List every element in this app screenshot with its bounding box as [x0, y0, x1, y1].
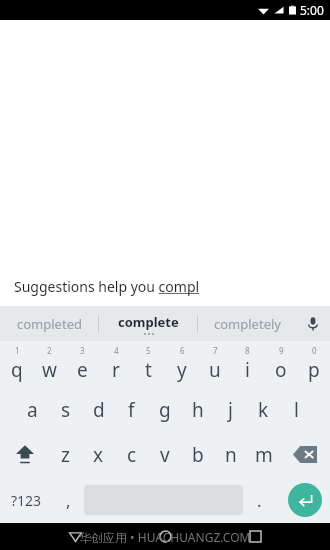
staticText: r: [112, 357, 120, 383]
button[interactable]: g: [148, 387, 181, 432]
staticText: ,: [66, 489, 71, 512]
staticText: 8: [245, 345, 250, 356]
button[interactable]: completed: [0, 306, 98, 341]
staticText: 4: [114, 345, 119, 356]
staticText: a: [27, 397, 38, 423]
staticText: 华创应用 • HUACHUANGZ.COM: [79, 529, 251, 545]
staticText: h: [192, 397, 204, 423]
staticText: Suggestions help you compl: [14, 277, 200, 296]
button[interactable]: completely: [198, 306, 296, 341]
button[interactable]: Voice input: [296, 306, 330, 341]
staticText: c: [127, 442, 137, 468]
button[interactable]: Backspace: [280, 432, 330, 477]
staticText: 7: [213, 345, 218, 356]
staticText: g: [159, 397, 171, 423]
button[interactable]: s: [49, 387, 82, 432]
staticText: completely: [214, 315, 281, 333]
button[interactable]: 9: [264, 341, 297, 387]
button[interactable]: l: [280, 387, 313, 432]
staticText: k: [258, 397, 269, 423]
staticText: t: [145, 357, 152, 383]
button[interactable]: 6: [165, 341, 198, 387]
button[interactable]: Home: [150, 523, 180, 550]
button[interactable]: 8: [231, 341, 264, 387]
staticText: 2: [47, 345, 52, 356]
staticText: w: [42, 357, 57, 383]
staticText: b: [192, 442, 204, 468]
staticText: 3: [80, 345, 85, 356]
button[interactable]: 3: [66, 341, 99, 387]
staticText: d: [93, 397, 105, 423]
button[interactable]: j: [214, 387, 247, 432]
staticText: ?123: [11, 491, 42, 510]
staticText: l: [294, 397, 299, 423]
staticText: completed: [17, 315, 82, 333]
button[interactable]: ,: [52, 477, 84, 523]
button[interactable]: f: [115, 387, 148, 432]
button[interactable]: complete: [99, 306, 197, 341]
button[interactable]: Back: [60, 523, 90, 550]
button[interactable]: 1: [0, 341, 33, 387]
button[interactable]: Enter: [288, 483, 322, 517]
staticText: u: [209, 357, 221, 383]
staticText: complete: [118, 313, 179, 331]
button[interactable]: ?123: [0, 477, 52, 523]
staticText: 6: [180, 345, 185, 356]
button[interactable]: Recents: [240, 523, 270, 550]
button[interactable]: c: [115, 432, 148, 477]
staticText: n: [225, 442, 237, 468]
button[interactable]: d: [82, 387, 115, 432]
staticText: o: [275, 357, 287, 383]
staticText: 9: [279, 345, 284, 356]
button[interactable]: b: [181, 432, 214, 477]
button[interactable]: k: [247, 387, 280, 432]
button[interactable]: 2: [33, 341, 66, 387]
staticText: 5: [146, 345, 151, 356]
staticText: f: [128, 397, 135, 423]
button[interactable]: 4: [99, 341, 132, 387]
button[interactable]: h: [181, 387, 214, 432]
button[interactable]: 7: [198, 341, 231, 387]
button[interactable]: .: [243, 477, 275, 523]
staticText: s: [61, 397, 71, 423]
staticText: p: [308, 357, 320, 383]
button[interactable]: m: [247, 432, 280, 477]
staticText: y: [177, 357, 187, 383]
staticText: .: [257, 489, 262, 512]
staticText: q: [11, 357, 23, 383]
staticText: v: [160, 442, 170, 468]
staticText: 1: [15, 345, 20, 356]
button[interactable]: v: [148, 432, 181, 477]
staticText: e: [77, 357, 88, 383]
button[interactable]: z: [49, 432, 82, 477]
staticText: 5:00: [300, 2, 324, 18]
staticText: m: [255, 442, 273, 468]
staticText: x: [93, 442, 104, 468]
button[interactable]: 5: [132, 341, 165, 387]
button[interactable]: x: [82, 432, 115, 477]
staticText: j: [228, 397, 233, 423]
button[interactable]: n: [214, 432, 247, 477]
button[interactable]: Shift: [0, 432, 49, 477]
staticText: 0: [312, 345, 317, 356]
staticText: z: [61, 442, 70, 468]
button[interactable]: a: [16, 387, 49, 432]
staticText: i: [245, 357, 250, 383]
button[interactable]: 0: [297, 341, 330, 387]
